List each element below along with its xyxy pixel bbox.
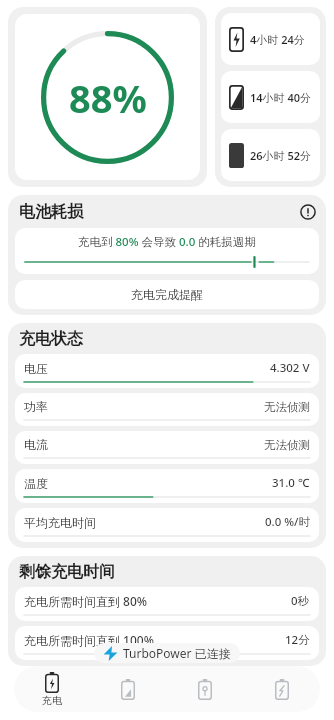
staticText: 充电所需时间直到 80% [24, 593, 148, 609]
button[interactable]: 充电 [14, 666, 90, 712]
staticText: 电流 [24, 437, 48, 452]
staticText: 无法侦测 [264, 438, 310, 452]
staticText: 电压 [24, 361, 48, 376]
button[interactable]: 充电到 80% 会导致 0.0 的耗损週期 [15, 228, 319, 274]
staticText: 温度 [24, 476, 48, 491]
button[interactable]: 功率 [15, 393, 319, 426]
button[interactable]: 充电所需时间直到 100% [15, 626, 319, 660]
staticText: 0秒 [291, 593, 310, 609]
button[interactable]: 充电完成提醒 [15, 280, 319, 309]
staticText: 0.0 %/时 [265, 514, 310, 530]
button[interactable]: 电池信息 [166, 666, 243, 712]
staticText: 充电 [42, 694, 62, 707]
staticText: 充电到 80% 会导致 0.0 的耗损週期 [78, 234, 256, 250]
button[interactable]: 温度 [15, 469, 319, 503]
staticText: 功率 [24, 399, 48, 414]
staticText: 剩馀充电时间 [19, 562, 115, 582]
button[interactable]: 设定 [243, 666, 320, 712]
button[interactable]: 26小时 52分 [221, 129, 320, 181]
button[interactable]: 充电所需时间直到 80% [15, 587, 319, 621]
staticText: 充电完成提醒 [131, 287, 203, 302]
button[interactable]: 平均充电时间 [15, 508, 319, 542]
staticText: 14小时 40分 [250, 90, 312, 105]
button[interactable]: 14小时 40分 [221, 71, 320, 123]
button[interactable]: TurboPower 已连接 [94, 643, 240, 663]
staticText: 无法侦测 [264, 400, 310, 414]
staticText: 26小时 52分 [250, 148, 312, 163]
button[interactable]: 电流 [15, 431, 319, 464]
button[interactable]: 电压 [15, 354, 319, 388]
button[interactable]: 耗损信息 [297, 201, 319, 223]
button[interactable]: 88% [15, 14, 200, 180]
staticText: TurboPower 已连接 [123, 645, 231, 661]
staticText: 88% [69, 72, 147, 124]
button[interactable]: 4小时 24分 [221, 13, 320, 65]
staticText: 平均充电时间 [24, 515, 96, 530]
staticText: 充电状态 [19, 329, 83, 349]
staticText: 12分 [285, 632, 310, 648]
button[interactable]: 统计 [90, 666, 166, 712]
staticText: 4小时 24分 [250, 32, 305, 47]
staticText: 4.302 V [270, 360, 310, 376]
staticText: 电池耗损 [19, 202, 83, 222]
staticText: 31.0 ℃ [272, 475, 310, 491]
staticText: 充电所需时间直到 100% [24, 632, 154, 648]
